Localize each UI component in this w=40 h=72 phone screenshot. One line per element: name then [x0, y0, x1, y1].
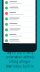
- staticText: Stay on top of every: [7, 51, 33, 54]
- button[interactable]: [3, 0, 35, 5]
- button[interactable]: [3, 38, 35, 44]
- button[interactable]: [3, 27, 35, 33]
- button[interactable]: [3, 22, 35, 27]
- staticText: Smart inbox, built in: [6, 65, 34, 68]
- staticText: lifting a finger: [9, 60, 30, 63]
- button[interactable]: [3, 16, 35, 22]
- button[interactable]: [3, 33, 35, 38]
- button[interactable]: [3, 11, 35, 16]
- button[interactable]: [3, 5, 35, 11]
- staticText: conversation without: [5, 55, 34, 59]
